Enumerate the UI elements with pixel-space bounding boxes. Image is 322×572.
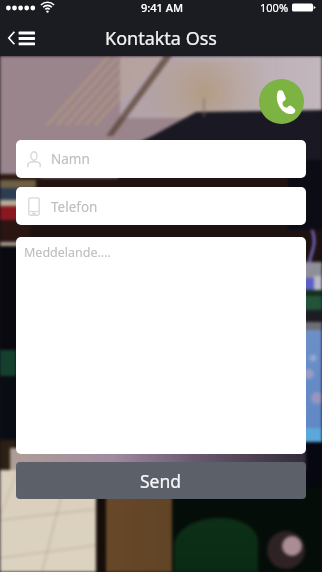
button[interactable]: Meddelande....	[16, 237, 306, 454]
staticText: 9:41 AM	[141, 0, 184, 15]
button[interactable]: Menu	[6, 23, 54, 53]
button[interactable]: Telefon	[16, 187, 306, 225]
staticText: Send	[140, 469, 182, 493]
staticText: 100%	[260, 0, 289, 15]
staticText: Meddelande....	[24, 244, 111, 261]
button[interactable]: Call	[259, 79, 304, 124]
button[interactable]: Namn	[16, 140, 306, 178]
button[interactable]: Send	[16, 462, 306, 499]
staticText: Namn	[51, 150, 90, 168]
staticText: Kontakta Oss	[105, 26, 217, 51]
staticText: Telefon	[51, 198, 98, 216]
